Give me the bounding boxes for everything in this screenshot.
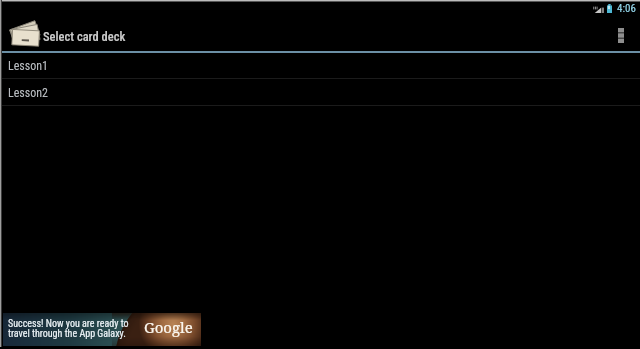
staticText: Lesson2 (8, 86, 49, 100)
staticText: Lesson1 (8, 59, 49, 73)
button[interactable]: More options (601, 13, 640, 51)
staticText: Select card deck (43, 29, 126, 44)
button[interactable]: Lesson2 (0, 79, 640, 105)
staticText: travel through the App Galaxy. (8, 328, 126, 340)
button[interactable]: Lesson1 (0, 53, 640, 78)
staticText: Google (144, 317, 193, 337)
staticText: Success! Now you are ready to (8, 318, 129, 330)
button[interactable]: Success! Now you are ready to (3, 313, 201, 346)
staticText: 4:06 (617, 2, 636, 15)
